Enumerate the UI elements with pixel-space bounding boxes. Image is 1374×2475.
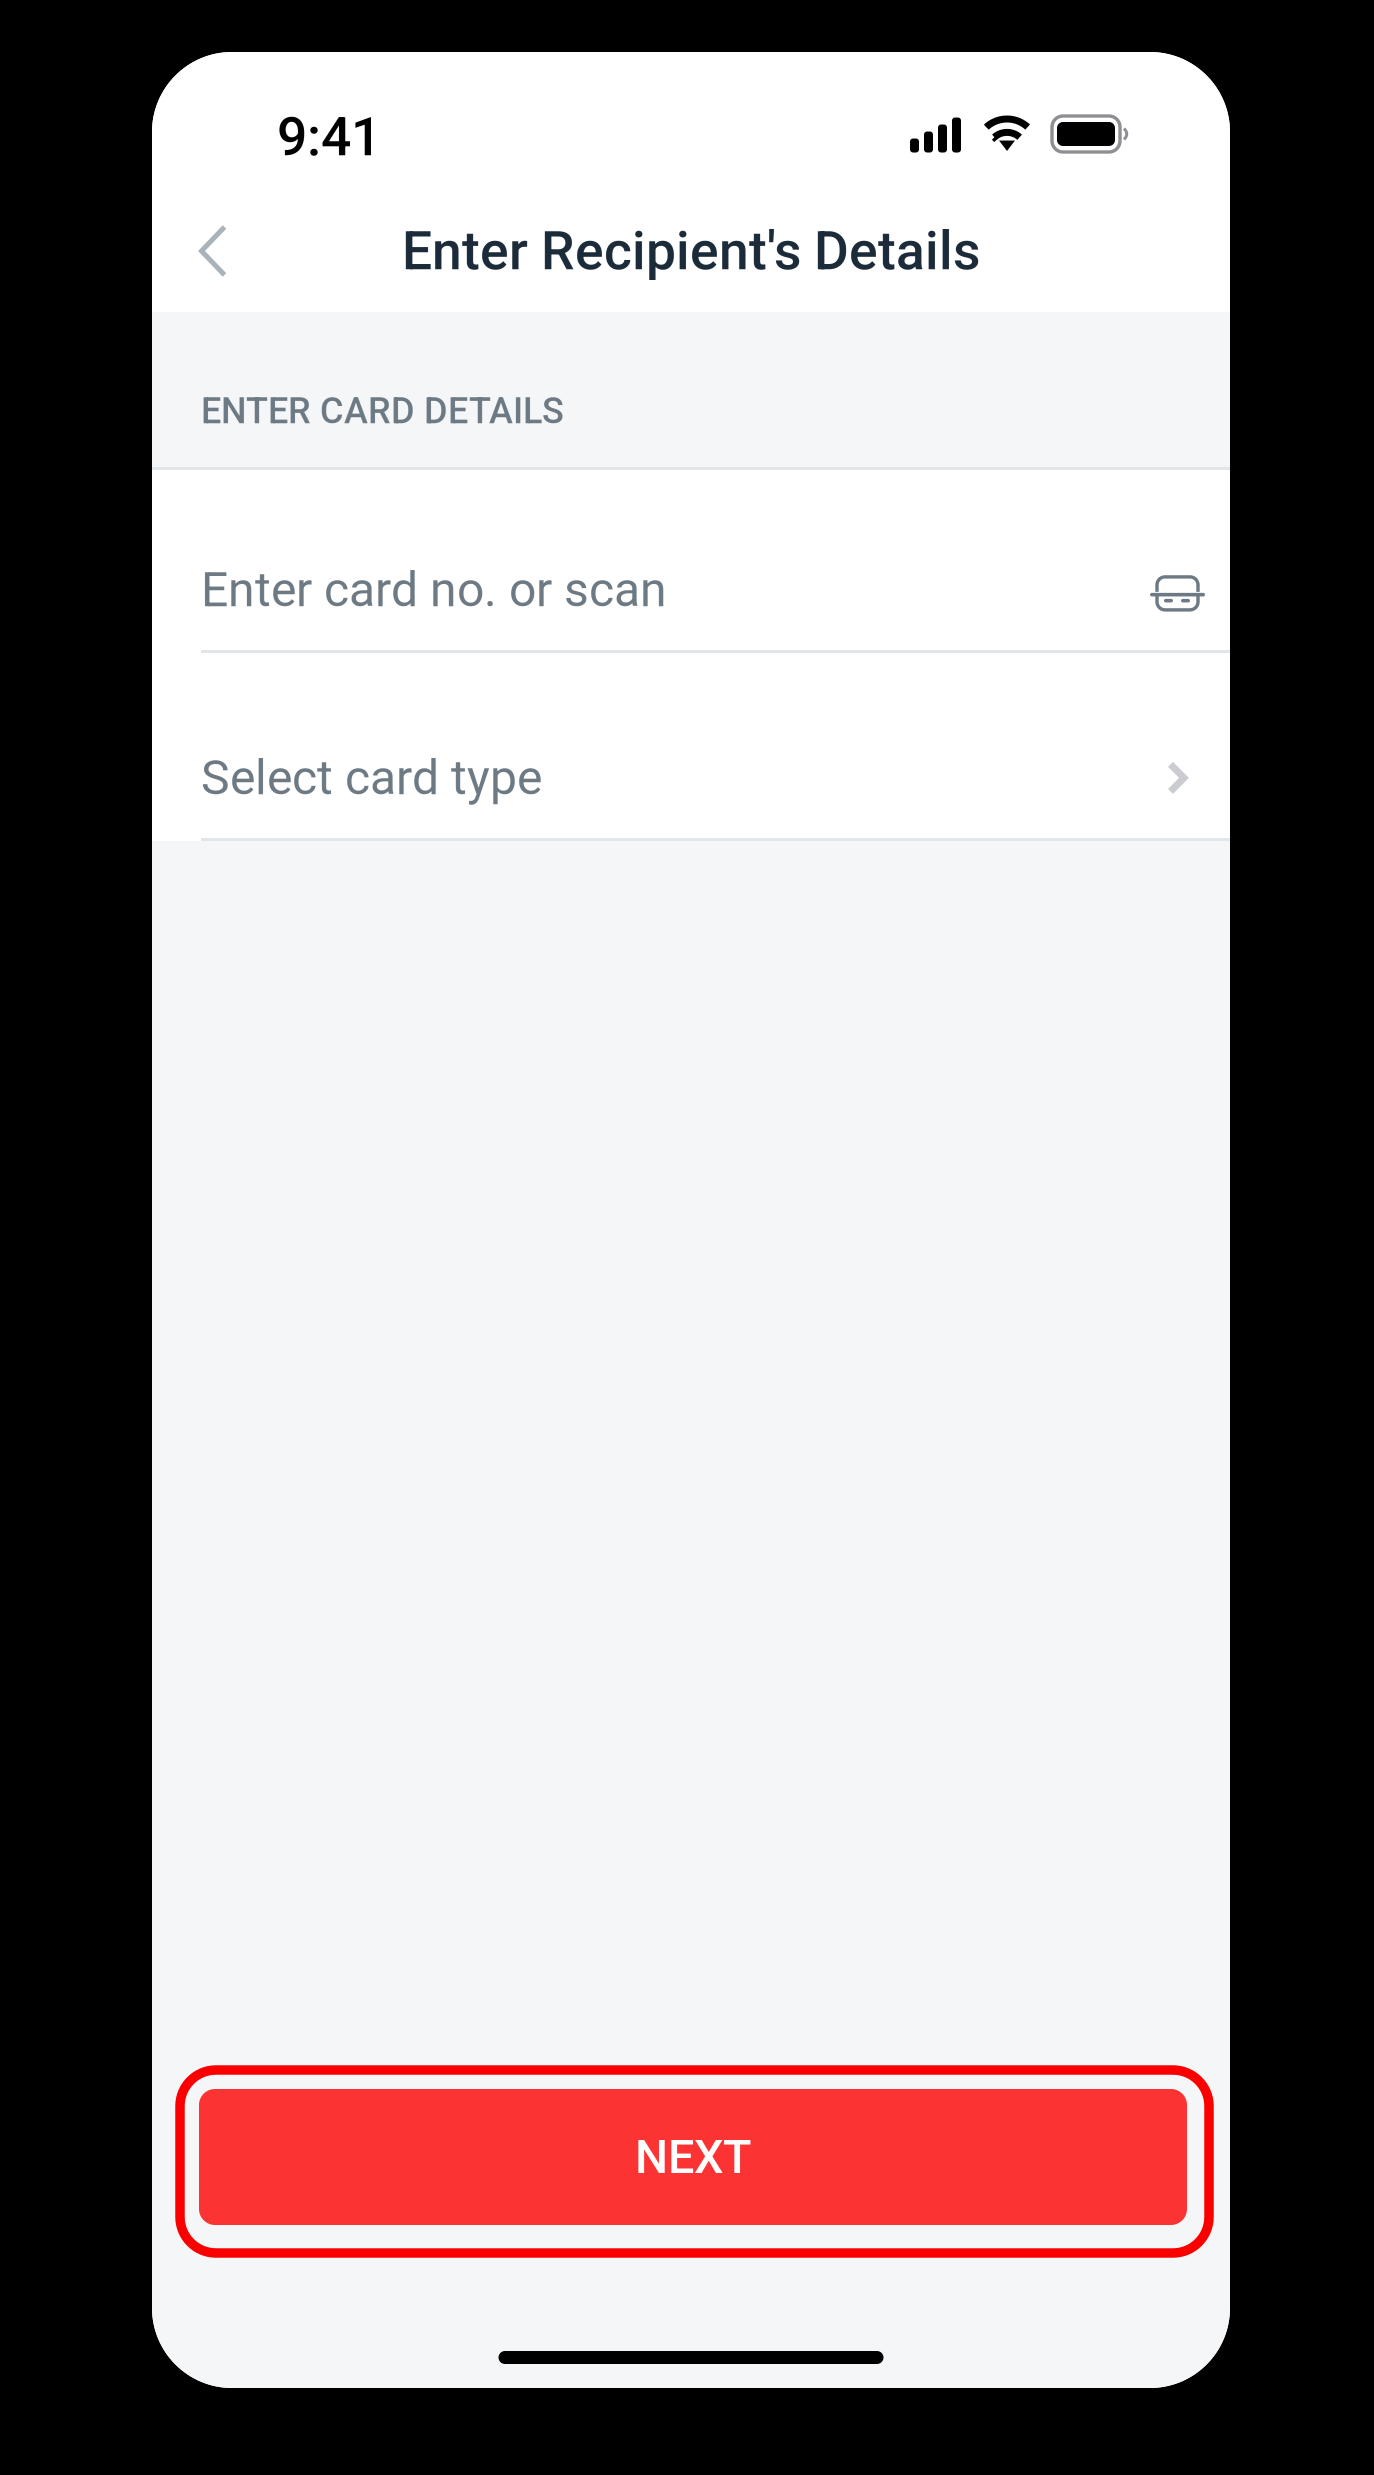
staticText: NEXT [635, 2130, 751, 2184]
staticText: 9:41 [277, 106, 381, 168]
button[interactable]: Select card type [152, 653, 1230, 841]
staticText: Enter card no. or scan [201, 562, 667, 618]
staticText: Select card type [201, 750, 542, 806]
staticText: Enter Recipient's Details [402, 220, 980, 282]
button[interactable]: Back [169, 201, 257, 301]
button[interactable]: Enter card no. or scan [152, 470, 1230, 653]
button[interactable]: NEXT [180, 2070, 1209, 2253]
staticText: ENTER CARD DETAILS [201, 390, 564, 432]
